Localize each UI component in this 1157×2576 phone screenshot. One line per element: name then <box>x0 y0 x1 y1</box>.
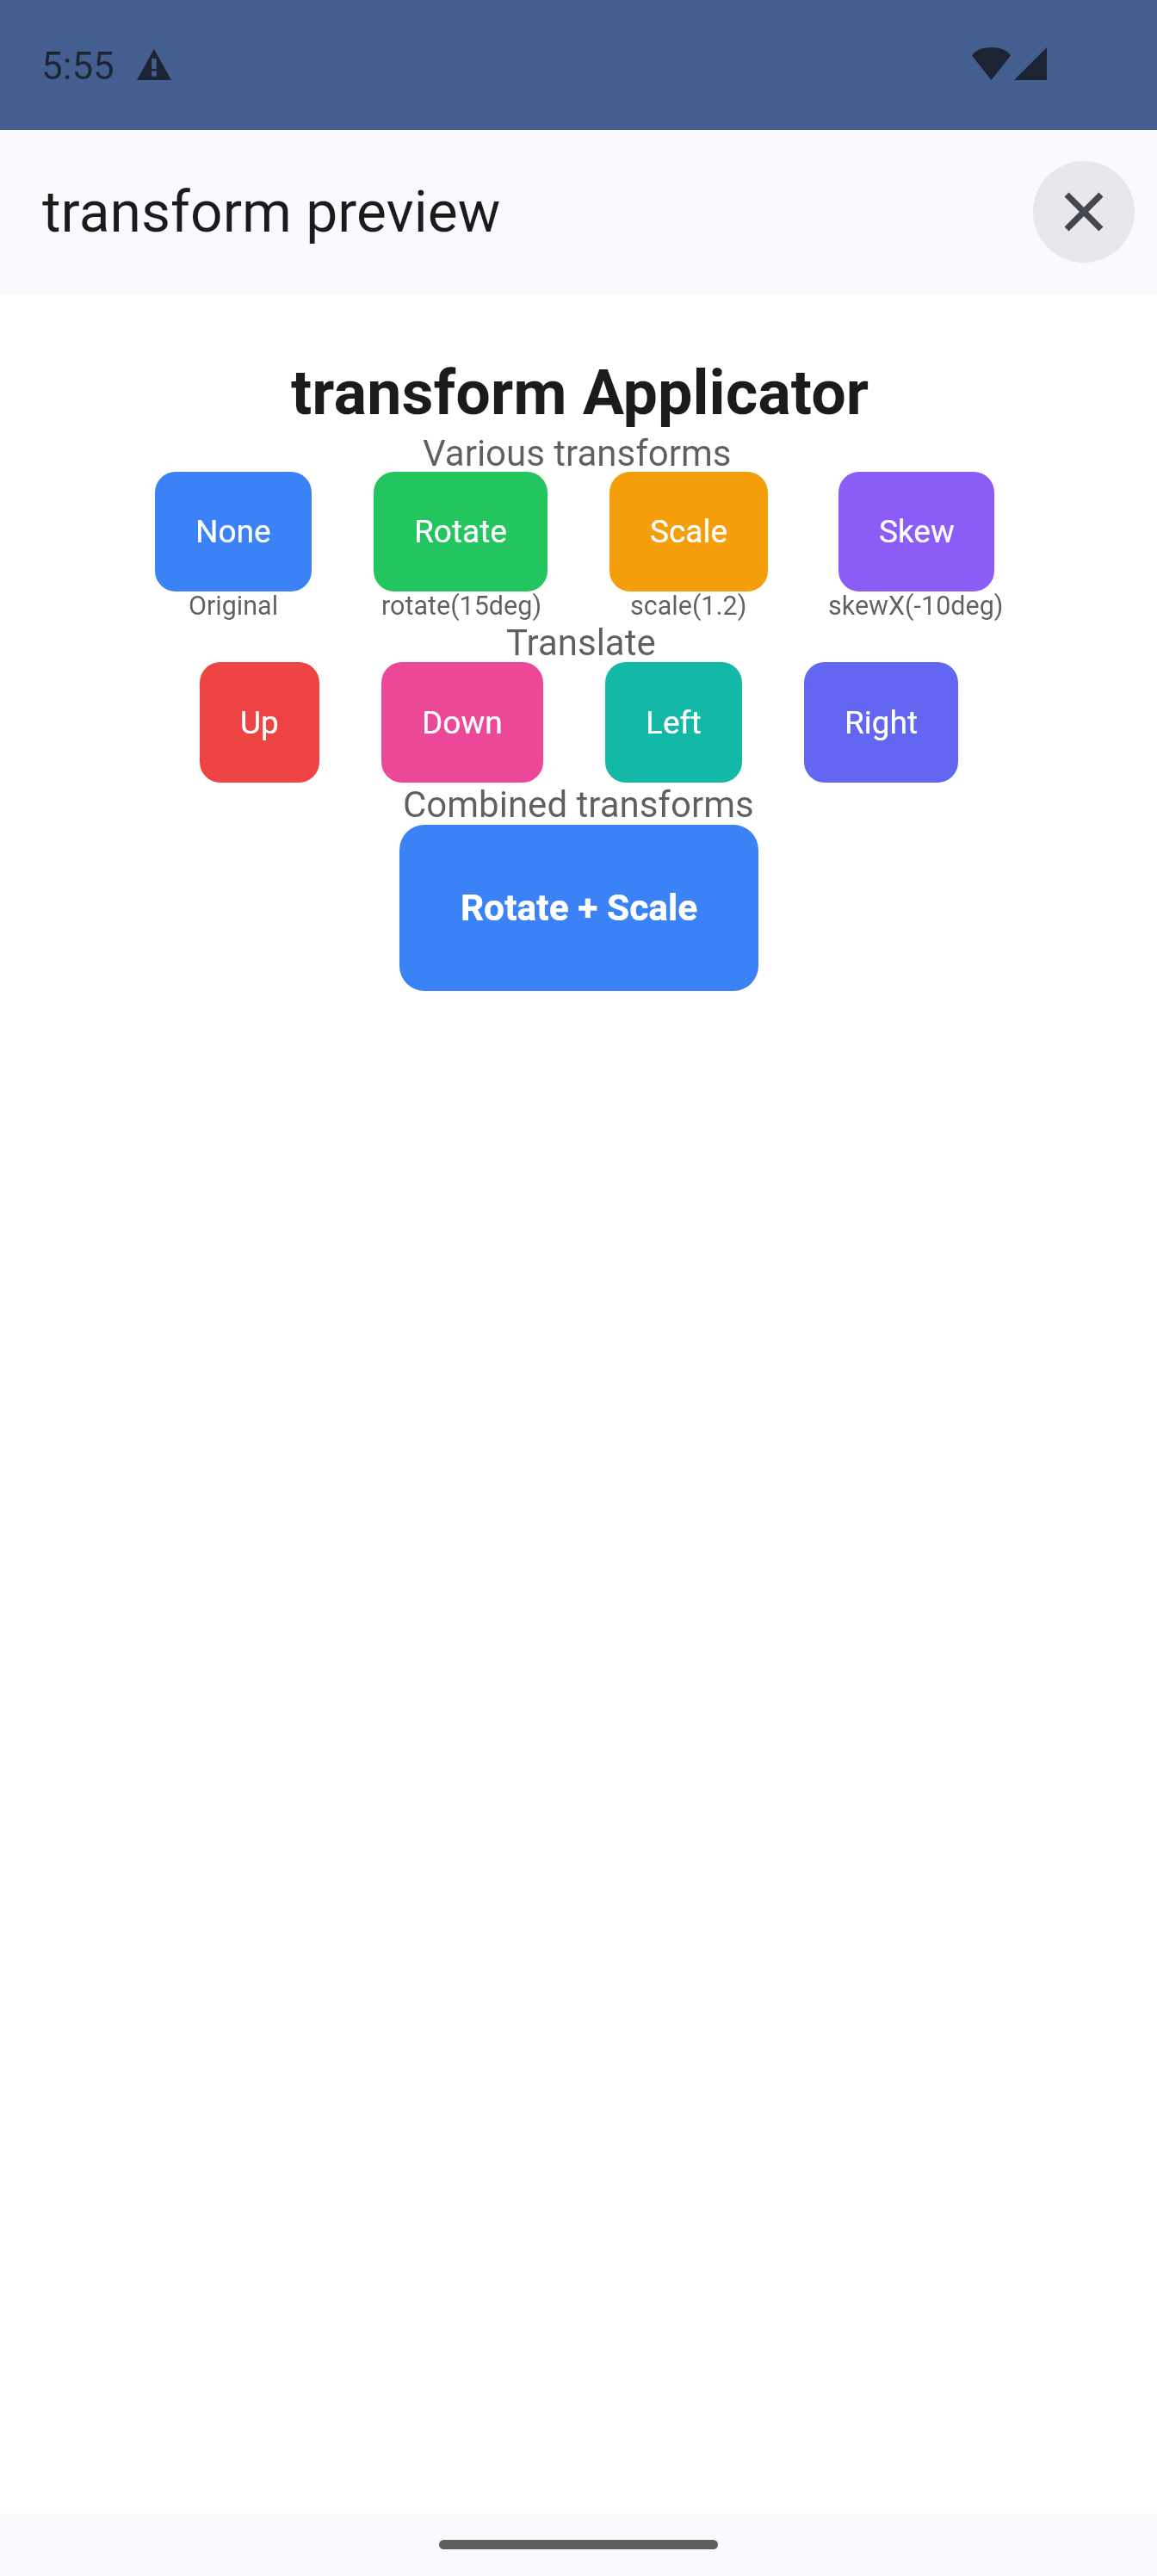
staticText: Left <box>646 704 702 741</box>
staticText: 5:55 <box>41 44 114 89</box>
staticText: Skew <box>879 513 955 550</box>
staticText: skewX(-10deg) <box>828 591 1004 622</box>
staticText: Right <box>845 704 919 741</box>
staticText: transform Applicator <box>291 356 869 429</box>
button[interactable]: Right <box>804 662 958 783</box>
staticText: rotate(15deg) <box>381 591 541 622</box>
staticText: Up <box>240 704 279 741</box>
staticText: Various transforms <box>423 432 732 474</box>
staticText: Rotate + Scale <box>461 887 698 930</box>
button[interactable]: None <box>155 472 312 591</box>
button[interactable]: Rotate <box>374 472 548 591</box>
staticText: Scale <box>650 513 728 550</box>
button[interactable]: Skew <box>838 472 994 591</box>
button[interactable]: Scale <box>609 472 768 591</box>
staticText: Rotate <box>414 513 507 550</box>
staticText: Translate <box>506 622 656 664</box>
button[interactable]: Up <box>200 662 319 783</box>
button[interactable]: Down <box>381 662 543 783</box>
button[interactable]: Close <box>1033 161 1135 263</box>
staticText: scale(1.2) <box>630 591 747 622</box>
staticText: Combined transforms <box>403 783 754 826</box>
staticText: None <box>195 513 271 550</box>
button[interactable]: Left <box>605 662 742 783</box>
button[interactable]: Rotate + Scale <box>399 825 758 991</box>
staticText: transform preview <box>42 179 501 245</box>
staticText: Down <box>422 704 503 741</box>
staticText: Original <box>189 591 279 622</box>
